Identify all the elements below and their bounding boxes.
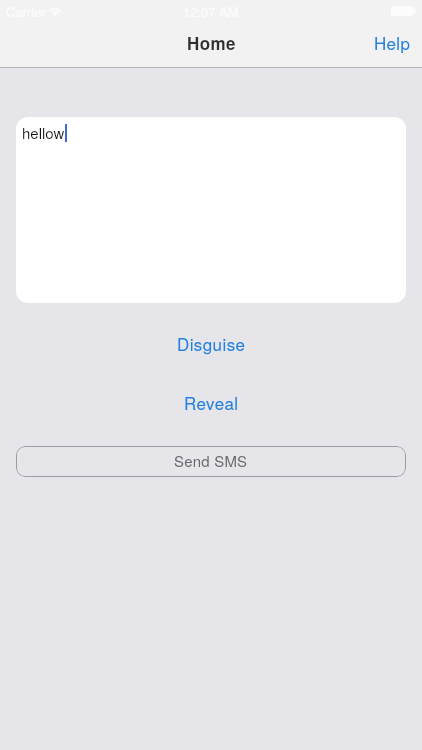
staticText: Send SMS	[174, 450, 248, 471]
staticText: Reveal	[184, 390, 239, 414]
button[interactable]: Reveal	[0, 388, 422, 416]
button[interactable]: Send SMS	[16, 446, 406, 477]
other: Wi-Fi signal	[48, 4, 62, 16]
staticText: hellow	[22, 122, 65, 143]
staticText: Disguise	[177, 331, 246, 355]
staticText: Help	[374, 30, 411, 54]
staticText: 12:07 AM	[183, 2, 239, 21]
button[interactable]: Help	[361, 22, 422, 62]
button[interactable]: Disguise	[0, 329, 422, 357]
staticText: Home	[187, 31, 236, 55]
button[interactable]: hellow	[16, 117, 406, 303]
staticText: Carrier	[6, 2, 46, 21]
